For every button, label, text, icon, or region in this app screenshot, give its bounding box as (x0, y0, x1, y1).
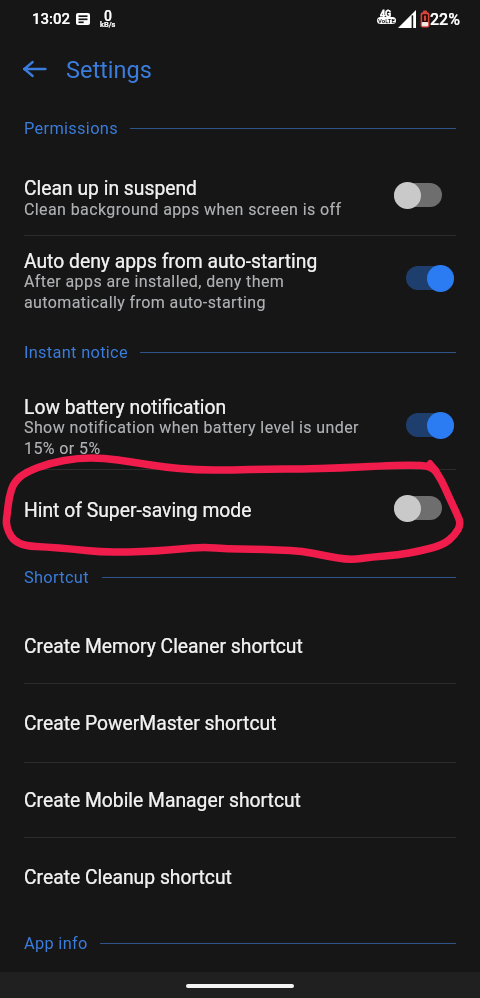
staticText: VoLTE (378, 17, 395, 24)
staticText: App info (24, 934, 88, 953)
staticText: Auto deny apps from auto-starting (24, 250, 318, 273)
staticText: Create Mobile Manager shortcut (24, 789, 301, 812)
staticText: 4G (380, 9, 392, 20)
staticText: Permissions (24, 119, 118, 138)
staticText: Clean up in suspend (24, 177, 197, 200)
button[interactable] (0, 600, 480, 683)
staticText: Show notification when battery level is … (24, 418, 359, 458)
staticText: After apps are installed, deny them auto… (24, 272, 285, 312)
button[interactable] (0, 150, 480, 235)
staticText: Create PowerMaster shortcut (24, 712, 277, 735)
staticText: 13:02 (32, 10, 71, 28)
staticText: Create Cleanup shortcut (24, 866, 232, 889)
staticText: 0 (104, 8, 112, 24)
staticText: 22% (430, 10, 460, 29)
staticText: Instant notice (24, 343, 128, 362)
staticText: Shortcut (24, 568, 89, 587)
button[interactable] (0, 684, 480, 762)
staticText: Clean background apps when screen is off (24, 200, 342, 219)
staticText: Settings (66, 56, 152, 84)
button[interactable]: Back (11, 46, 57, 92)
staticText: Hint of Super-saving mode (24, 499, 252, 522)
button[interactable] (0, 763, 480, 837)
button[interactable] (0, 470, 480, 554)
button[interactable] (0, 380, 480, 469)
staticText: kB/s (100, 20, 116, 29)
staticText: Low battery notification (24, 396, 227, 419)
button[interactable] (0, 838, 480, 915)
button[interactable] (0, 236, 480, 330)
staticText: Create Memory Cleaner shortcut (24, 635, 303, 658)
